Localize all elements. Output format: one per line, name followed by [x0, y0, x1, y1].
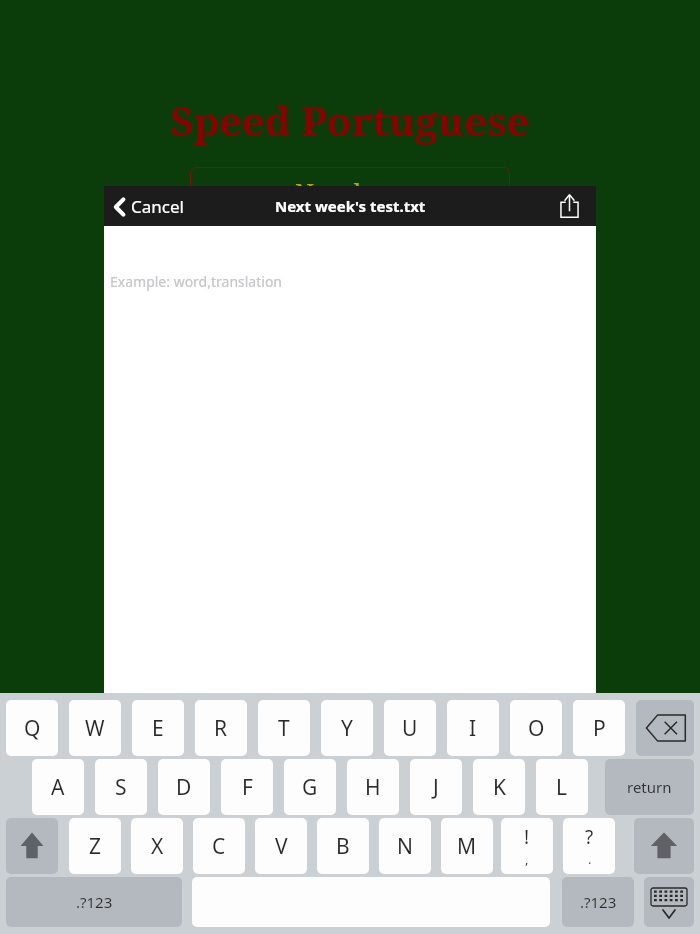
button[interactable]: A: [32, 759, 84, 815]
button[interactable]: .?123: [562, 877, 634, 927]
button[interactable]: I: [447, 700, 499, 756]
staticText: W: [85, 714, 105, 743]
button[interactable]: H: [347, 759, 399, 815]
staticText: Z: [89, 832, 102, 861]
button[interactable]: O: [510, 700, 562, 756]
staticText: .: [588, 850, 592, 868]
button[interactable]: S: [95, 759, 147, 815]
staticText: V: [275, 832, 288, 861]
staticText: E: [152, 714, 164, 743]
staticText: P: [593, 714, 606, 743]
staticText: L: [556, 773, 568, 802]
button[interactable]: Numbers: [190, 167, 510, 217]
button[interactable]: .?123: [6, 877, 182, 927]
staticText: Next week's test.txt: [275, 196, 426, 216]
staticText: R: [214, 714, 228, 743]
staticText: Numbers: [295, 175, 406, 209]
button[interactable]: F: [221, 759, 273, 815]
staticText: return: [627, 777, 672, 797]
button[interactable]: B: [317, 818, 369, 874]
button[interactable]: Z: [69, 818, 121, 874]
button[interactable]: U: [384, 700, 436, 756]
staticText: X: [151, 832, 164, 861]
button[interactable]: W: [69, 700, 121, 756]
staticText: O: [528, 714, 545, 743]
button[interactable]: K: [473, 759, 525, 815]
staticText: F: [242, 773, 253, 802]
staticText: A: [51, 773, 65, 802]
button[interactable]: ?: [563, 818, 615, 874]
staticText: H: [365, 773, 381, 802]
staticText: I: [469, 714, 477, 743]
button[interactable]: Hide keyboard: [644, 877, 694, 927]
staticText: B: [336, 832, 350, 861]
button[interactable]: X: [131, 818, 183, 874]
button[interactable]: V: [255, 818, 307, 874]
staticText: !: [524, 824, 530, 850]
button[interactable]: G: [284, 759, 336, 815]
staticText: K: [493, 773, 506, 802]
staticText: T: [278, 714, 290, 743]
staticText: Example: word,translation: [110, 272, 283, 291]
button[interactable]: !: [501, 818, 553, 874]
staticText: Speed Portuguese: [170, 93, 530, 147]
staticText: Q: [24, 714, 41, 743]
staticText: ?: [585, 824, 594, 850]
button[interactable]: Shift: [634, 818, 694, 874]
staticText: U: [402, 714, 418, 743]
staticText: C: [212, 832, 226, 861]
button[interactable]: L: [536, 759, 588, 815]
staticText: .?123: [580, 892, 617, 912]
button[interactable]: M: [441, 818, 493, 874]
staticText: Cancel: [131, 195, 184, 218]
staticText: D: [176, 773, 192, 802]
button[interactable]: C: [193, 818, 245, 874]
staticText: G: [302, 773, 318, 802]
button[interactable]: Share: [555, 192, 583, 220]
button[interactable]: E: [132, 700, 184, 756]
staticText: .?123: [76, 892, 113, 912]
button[interactable]: Backspace: [636, 700, 694, 756]
button[interactable]: Shift: [6, 818, 58, 874]
staticText: J: [433, 773, 439, 802]
button[interactable]: Q: [6, 700, 58, 756]
button[interactable]: J: [410, 759, 462, 815]
button[interactable]: Y: [321, 700, 373, 756]
staticText: S: [115, 773, 127, 802]
button[interactable]: P: [573, 700, 625, 756]
button[interactable]: D: [158, 759, 210, 815]
staticText: Y: [341, 714, 353, 743]
staticText: ,: [525, 850, 529, 868]
button[interactable]: R: [195, 700, 247, 756]
button[interactable]: return: [605, 759, 694, 815]
button[interactable]: N: [379, 818, 431, 874]
button[interactable]: T: [258, 700, 310, 756]
staticText: N: [397, 832, 413, 861]
staticText: M: [457, 832, 477, 861]
button[interactable]: Cancel: [113, 195, 184, 218]
